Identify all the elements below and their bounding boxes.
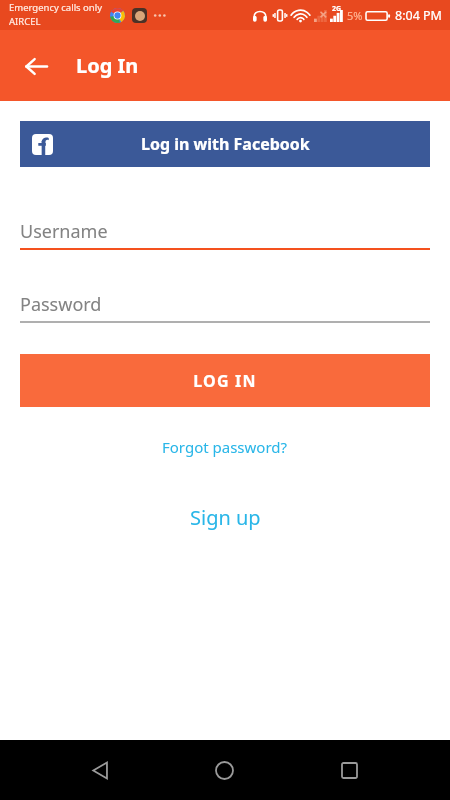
staticText: LOG IN [193, 370, 257, 392]
staticText: Password [20, 292, 102, 317]
staticText: Emergency calls only [9, 1, 103, 14]
staticText: 2G [332, 4, 342, 14]
button[interactable]: Log in with Facebook [20, 121, 430, 167]
button[interactable]: Sign up [0, 504, 450, 531]
staticText: Sign up [190, 504, 261, 531]
staticText: Forgot password? [162, 437, 288, 457]
staticText: Log In [76, 52, 139, 79]
staticText: 5% [347, 8, 363, 23]
button[interactable]: Forgot password? [0, 437, 450, 457]
staticText: Username [20, 219, 108, 244]
staticText: AIRCEL [9, 15, 41, 28]
button[interactable]: Username [20, 219, 430, 250]
button[interactable]: Recents [325, 746, 373, 794]
staticText: 8:04 PM [395, 7, 442, 24]
staticText: Log in with Facebook [141, 133, 310, 155]
button[interactable]: Home [200, 746, 248, 794]
button[interactable]: Password [20, 292, 430, 323]
button[interactable]: Back [14, 44, 58, 88]
button[interactable]: Back [76, 746, 124, 794]
button[interactable]: LOG IN [20, 354, 430, 407]
